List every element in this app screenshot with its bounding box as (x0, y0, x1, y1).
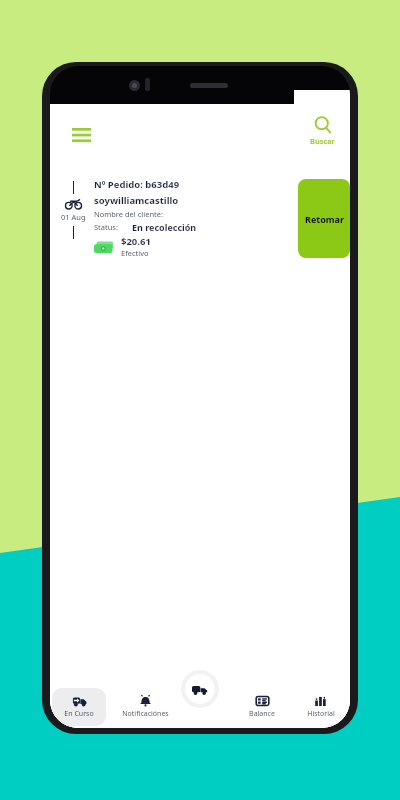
staticText: $20.61 (121, 235, 151, 248)
staticText: 01 Aug (61, 212, 86, 222)
staticText: Nombre del cliente: (94, 209, 163, 219)
button[interactable]: Balance (234, 688, 289, 726)
staticText: Balance (249, 709, 275, 719)
button[interactable]: Notificaciónes (110, 688, 180, 726)
button[interactable]: En Curso (52, 688, 106, 726)
staticText: Historial (307, 709, 335, 719)
staticText: En recolección (132, 221, 197, 233)
staticText: En Curso (64, 709, 94, 719)
staticText: soywilliamcastillo (94, 194, 179, 207)
staticText: Retomar (305, 213, 344, 225)
button[interactable]: Retomar (298, 179, 350, 258)
staticText: Status: (94, 222, 118, 232)
button[interactable]: Historial (293, 688, 348, 726)
staticText: Notificaciónes (122, 709, 169, 719)
button[interactable]: Buscar (294, 90, 350, 152)
button[interactable]: Entregas (185, 674, 215, 704)
button[interactable]: 01 Aug (52, 170, 350, 267)
staticText: Efectivo (121, 248, 149, 258)
staticText: Nº Pedido: b63d49 (94, 178, 180, 191)
button[interactable]: Menu (64, 118, 98, 152)
staticText: Buscar (310, 136, 335, 146)
